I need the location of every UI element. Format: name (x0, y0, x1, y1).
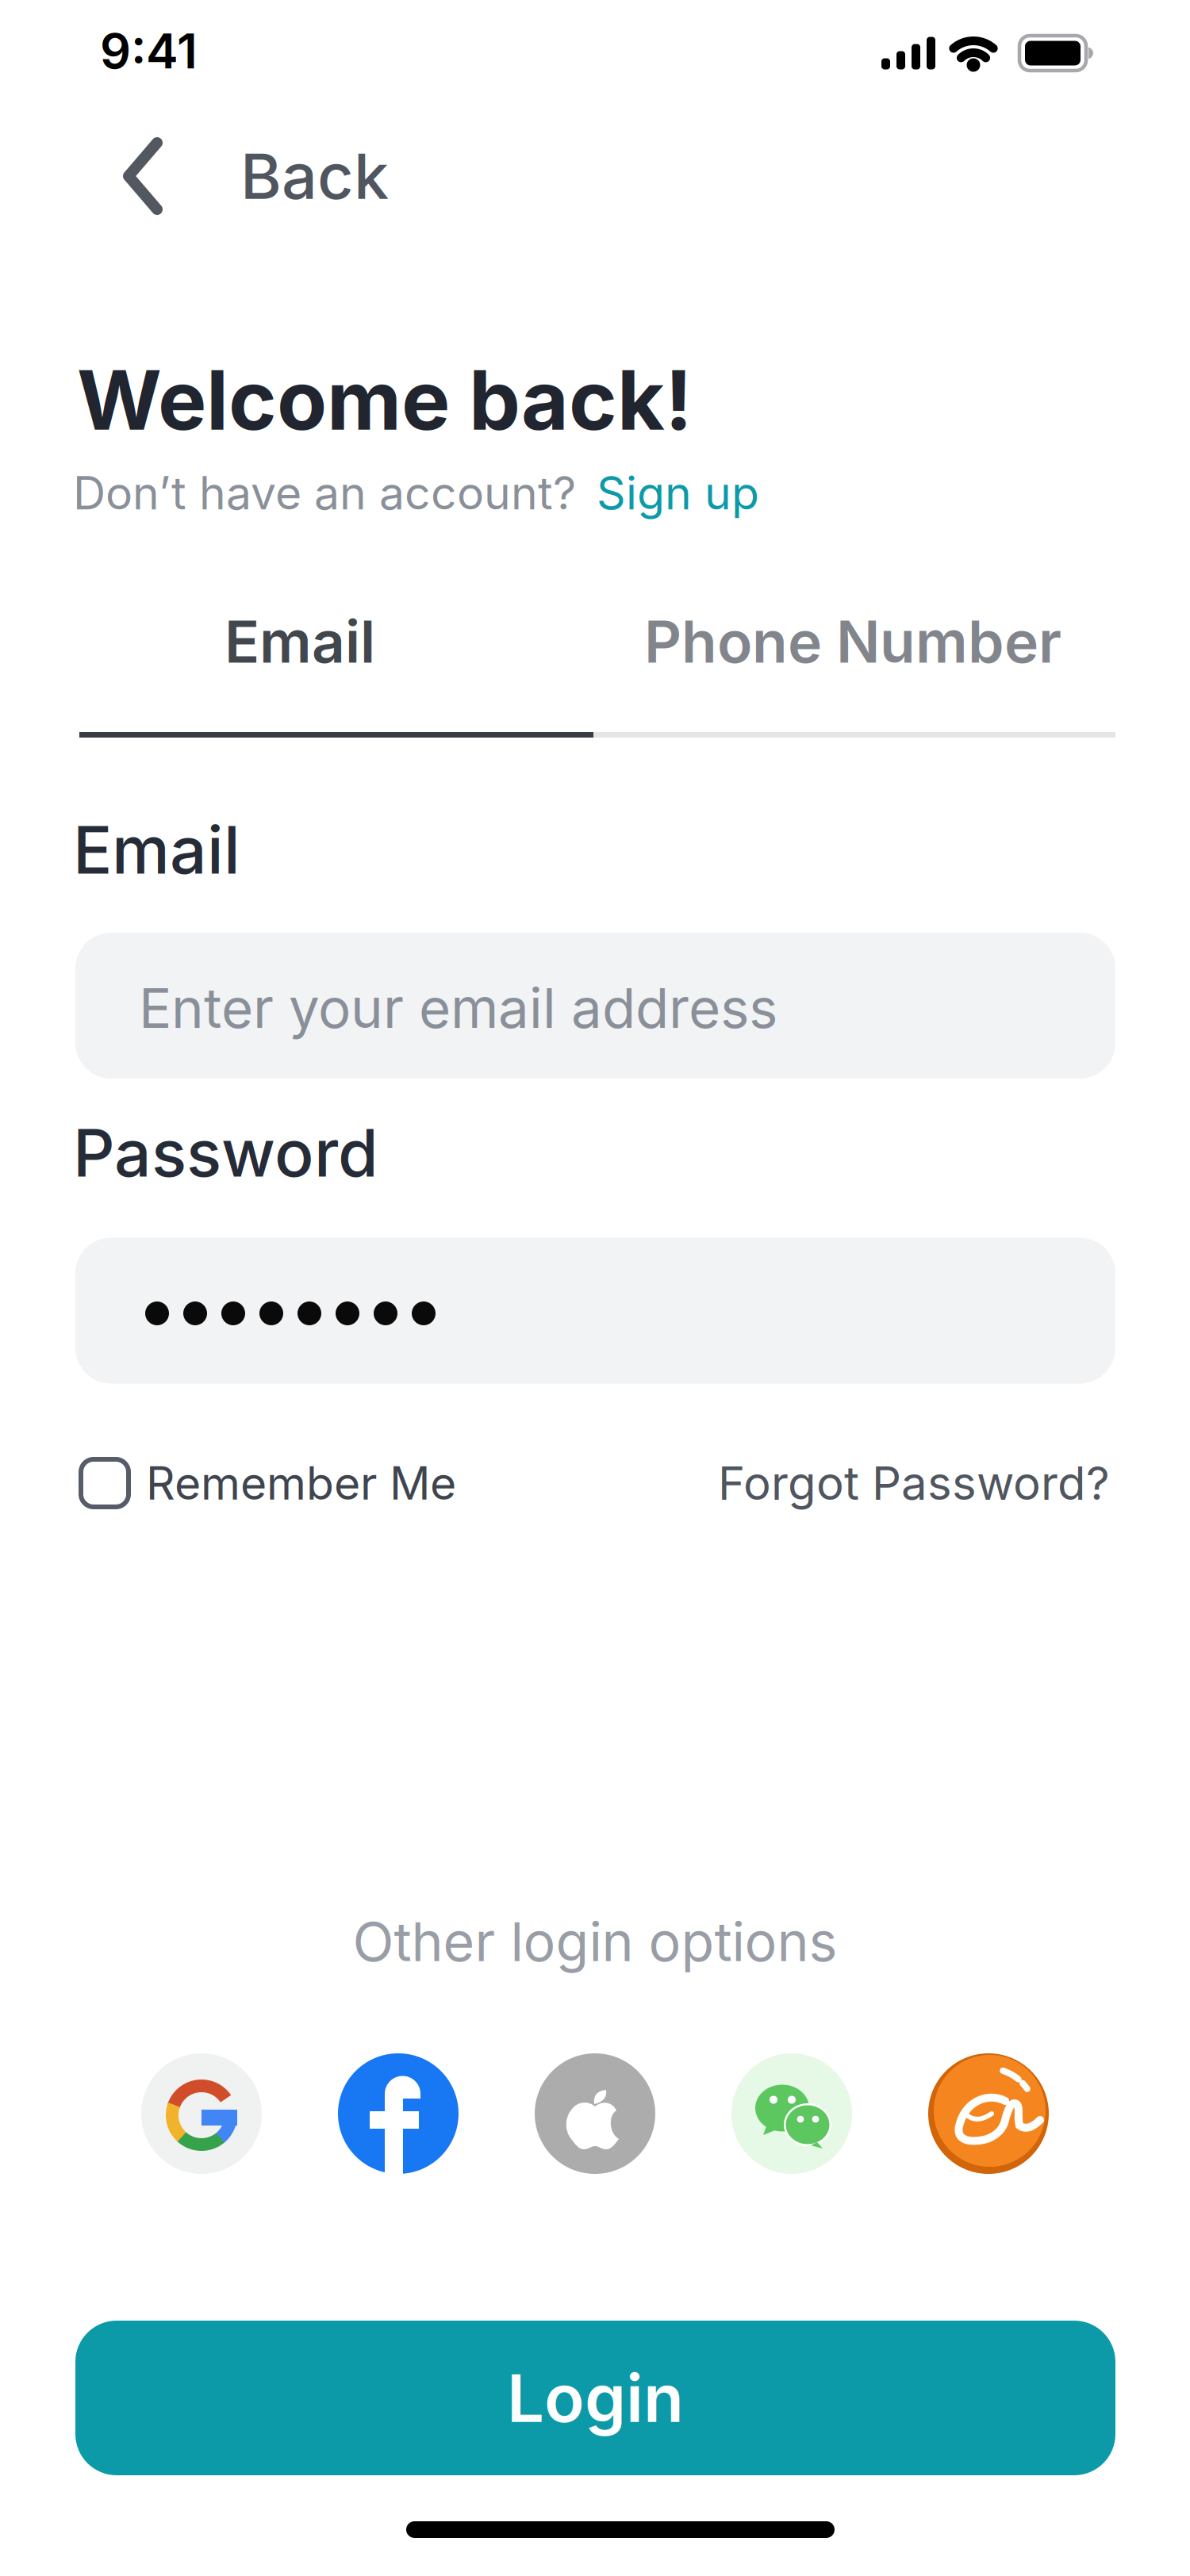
staticText: Remember Me (146, 1456, 456, 1510)
staticText: Back (240, 138, 389, 214)
staticText: Sign up (597, 466, 759, 520)
button[interactable]: Forgot Password? (718, 1455, 1110, 1511)
button[interactable]: Sign in with Google (141, 2053, 262, 2174)
button[interactable]: Email (78, 590, 522, 693)
button[interactable]: Sign in with Apple (535, 2053, 655, 2174)
button[interactable]: Sign in with Facebook (338, 2053, 459, 2174)
button[interactable]: Sign in with WeChat (731, 2053, 852, 2174)
button[interactable]: Sign in with Alibaba (928, 2053, 1049, 2174)
button[interactable]: Back (122, 137, 389, 215)
staticText: Login (507, 2358, 684, 2438)
button[interactable]: Sign up (597, 466, 759, 520)
staticText: Don’t have an account? (73, 466, 576, 520)
staticText: Email (225, 607, 375, 677)
button[interactable]: Login (75, 2321, 1115, 2475)
button[interactable]: Phone Number (595, 590, 1111, 693)
staticText: 9:41 (100, 21, 198, 80)
staticText: Forgot Password? (718, 1455, 1110, 1511)
button[interactable]: Password (75, 1238, 1115, 1384)
staticText: Welcome back! (77, 351, 693, 449)
button[interactable]: Email address (75, 933, 1115, 1079)
staticText: Enter your email address (139, 975, 777, 1041)
staticText: Email (73, 811, 240, 889)
staticText: Password (73, 1114, 378, 1192)
staticText: Phone Number (644, 607, 1061, 677)
button[interactable]: Remember Me (81, 1456, 456, 1510)
staticText: Other login options (353, 1909, 837, 1974)
